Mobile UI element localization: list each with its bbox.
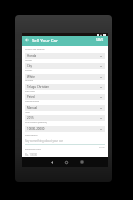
staticText: Rs. 10000: [25, 153, 38, 157]
staticText: White: [27, 75, 35, 79]
staticText: Sell Your Car: [32, 37, 58, 43]
button[interactable]: SAVE: [95, 36, 105, 44]
staticText: Description: [25, 134, 38, 137]
staticText: Colour: [25, 69, 33, 72]
staticText: 0/100: [99, 146, 105, 149]
staticText: 2015: [27, 116, 34, 120]
staticText: Model: [25, 59, 32, 62]
staticText: KMs Driven (approx): [25, 121, 47, 124]
button[interactable]: Rs. 10000: [25, 153, 105, 157]
staticText: Manual: [27, 106, 38, 110]
staticText: 10000-20000: [27, 127, 45, 131]
button[interactable]: Recent apps: [79, 159, 85, 165]
button[interactable]: Home: [63, 159, 69, 165]
button[interactable]: Say something about your car: [25, 139, 105, 143]
button[interactable]: City: [25, 63, 105, 69]
button[interactable]: 10000-20000: [25, 126, 105, 132]
button[interactable]: 2015: [25, 115, 105, 121]
staticText: Telugu Christian: [27, 85, 50, 89]
staticText: City: [27, 64, 33, 68]
staticText: Say something about your car: [25, 139, 63, 143]
staticText: Expected Price: [25, 148, 41, 151]
button[interactable]: Manual: [25, 105, 105, 111]
staticText: Fuel type: [25, 90, 35, 93]
button[interactable]: Telugu Christian: [25, 84, 105, 90]
button[interactable]: Back: [49, 159, 55, 165]
staticText: SAVE: [96, 38, 104, 42]
button[interactable]: Honda: [25, 53, 105, 59]
button[interactable]: White: [25, 74, 105, 80]
staticText: Honda: [27, 54, 37, 58]
button[interactable]: Petrol: [25, 94, 105, 100]
staticText: Transmission: [25, 100, 40, 103]
staticText: Petrol: [27, 95, 36, 99]
button[interactable]: Back: [24, 37, 30, 43]
staticText: Version: [25, 79, 34, 82]
staticText: What's the brand?: [25, 48, 45, 51]
staticText: Year: [25, 111, 30, 114]
